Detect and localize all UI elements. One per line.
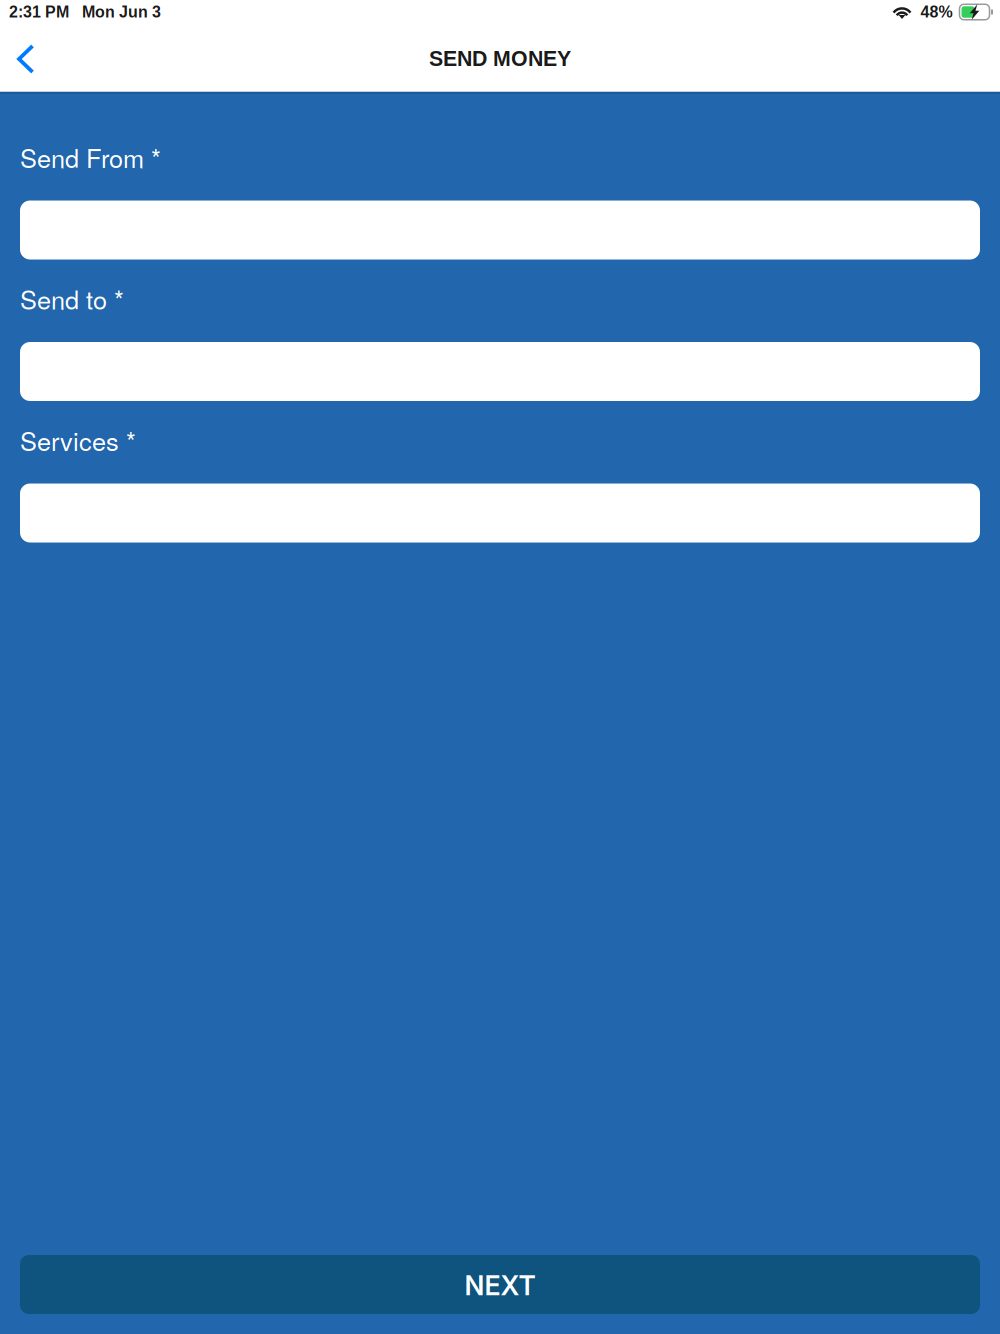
staticText: 2:31 PM xyxy=(9,3,69,21)
staticText: Mon Jun 3 xyxy=(82,3,161,21)
button[interactable]: Services xyxy=(20,483,980,542)
button[interactable]: Send From xyxy=(20,200,980,259)
staticText: Services * xyxy=(20,422,136,458)
button[interactable]: NEXT xyxy=(20,1255,980,1314)
button[interactable]: Back xyxy=(0,32,52,83)
staticText: 48% xyxy=(920,3,952,21)
button[interactable]: Send to xyxy=(20,342,980,401)
staticText: NEXT xyxy=(464,1269,535,1302)
staticText: Send From * xyxy=(20,139,161,175)
staticText: SEND MONEY xyxy=(429,47,571,70)
staticText: Send to * xyxy=(20,280,124,317)
